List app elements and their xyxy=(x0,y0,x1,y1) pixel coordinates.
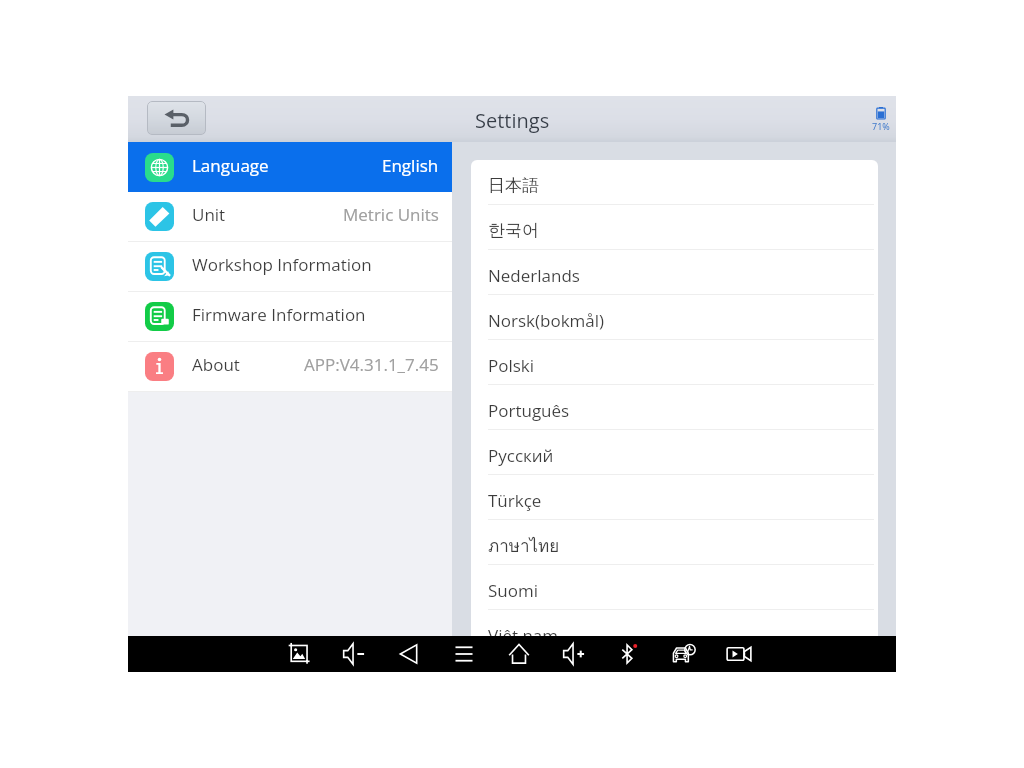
button[interactable]: 日本語 xyxy=(471,160,878,204)
staticText: 한국어 xyxy=(488,220,539,241)
button[interactable]: Việt nam xyxy=(471,610,878,654)
staticText: Polski xyxy=(488,354,535,377)
staticText: Firmware Information xyxy=(192,303,366,326)
staticText: Unit xyxy=(192,203,226,226)
button[interactable]: Firmware Information xyxy=(128,292,452,341)
staticText: Türkçe xyxy=(488,489,542,512)
button[interactable]: Vehicle xyxy=(656,636,711,672)
button[interactable]: Language xyxy=(128,142,452,192)
button[interactable]: ภาษาไทย xyxy=(471,520,878,564)
staticText: Language xyxy=(192,154,269,177)
staticText: Workshop Information xyxy=(192,253,372,276)
staticText: Português xyxy=(488,399,570,422)
staticText: 71% xyxy=(872,120,890,132)
button[interactable]: Volume down xyxy=(326,636,381,672)
staticText: Settings xyxy=(475,107,550,134)
button[interactable]: 한국어 xyxy=(471,205,878,249)
button[interactable]: Home xyxy=(491,636,546,672)
button[interactable]: About xyxy=(128,342,452,391)
staticText: English xyxy=(382,154,439,177)
staticText: Nederlands xyxy=(488,264,580,287)
button[interactable]: Suomi xyxy=(471,565,878,609)
button[interactable]: Volume up xyxy=(546,636,601,672)
button[interactable]: Unit xyxy=(128,192,452,241)
button[interactable]: Menu xyxy=(436,636,491,672)
staticText: Suomi xyxy=(488,579,539,602)
button[interactable]: Türkçe xyxy=(471,475,878,519)
button[interactable]: Workshop Information xyxy=(128,242,452,291)
button[interactable]: Bluetooth xyxy=(601,636,656,672)
button[interactable]: Polski xyxy=(471,340,878,384)
button[interactable]: Русский xyxy=(471,430,878,474)
staticText: Русский xyxy=(488,444,554,467)
button[interactable]: Norsk(bokmål) xyxy=(471,295,878,339)
button[interactable]: Nederlands xyxy=(471,250,878,294)
staticText: 日本語 xyxy=(488,175,539,196)
button[interactable]: Record xyxy=(711,636,766,672)
staticText: ภาษาไทย xyxy=(488,532,560,559)
staticText: Việt nam xyxy=(488,624,559,647)
button[interactable]: Português xyxy=(471,385,878,429)
staticText: Metric Units xyxy=(343,203,439,226)
staticText: Norsk(bokmål) xyxy=(488,309,605,332)
button[interactable]: Screenshot xyxy=(271,636,326,672)
staticText: APP:V4.31.1_7.45 xyxy=(304,353,439,376)
button[interactable]: Back xyxy=(147,101,206,135)
button[interactable]: Back xyxy=(381,636,436,672)
staticText: About xyxy=(192,353,240,376)
